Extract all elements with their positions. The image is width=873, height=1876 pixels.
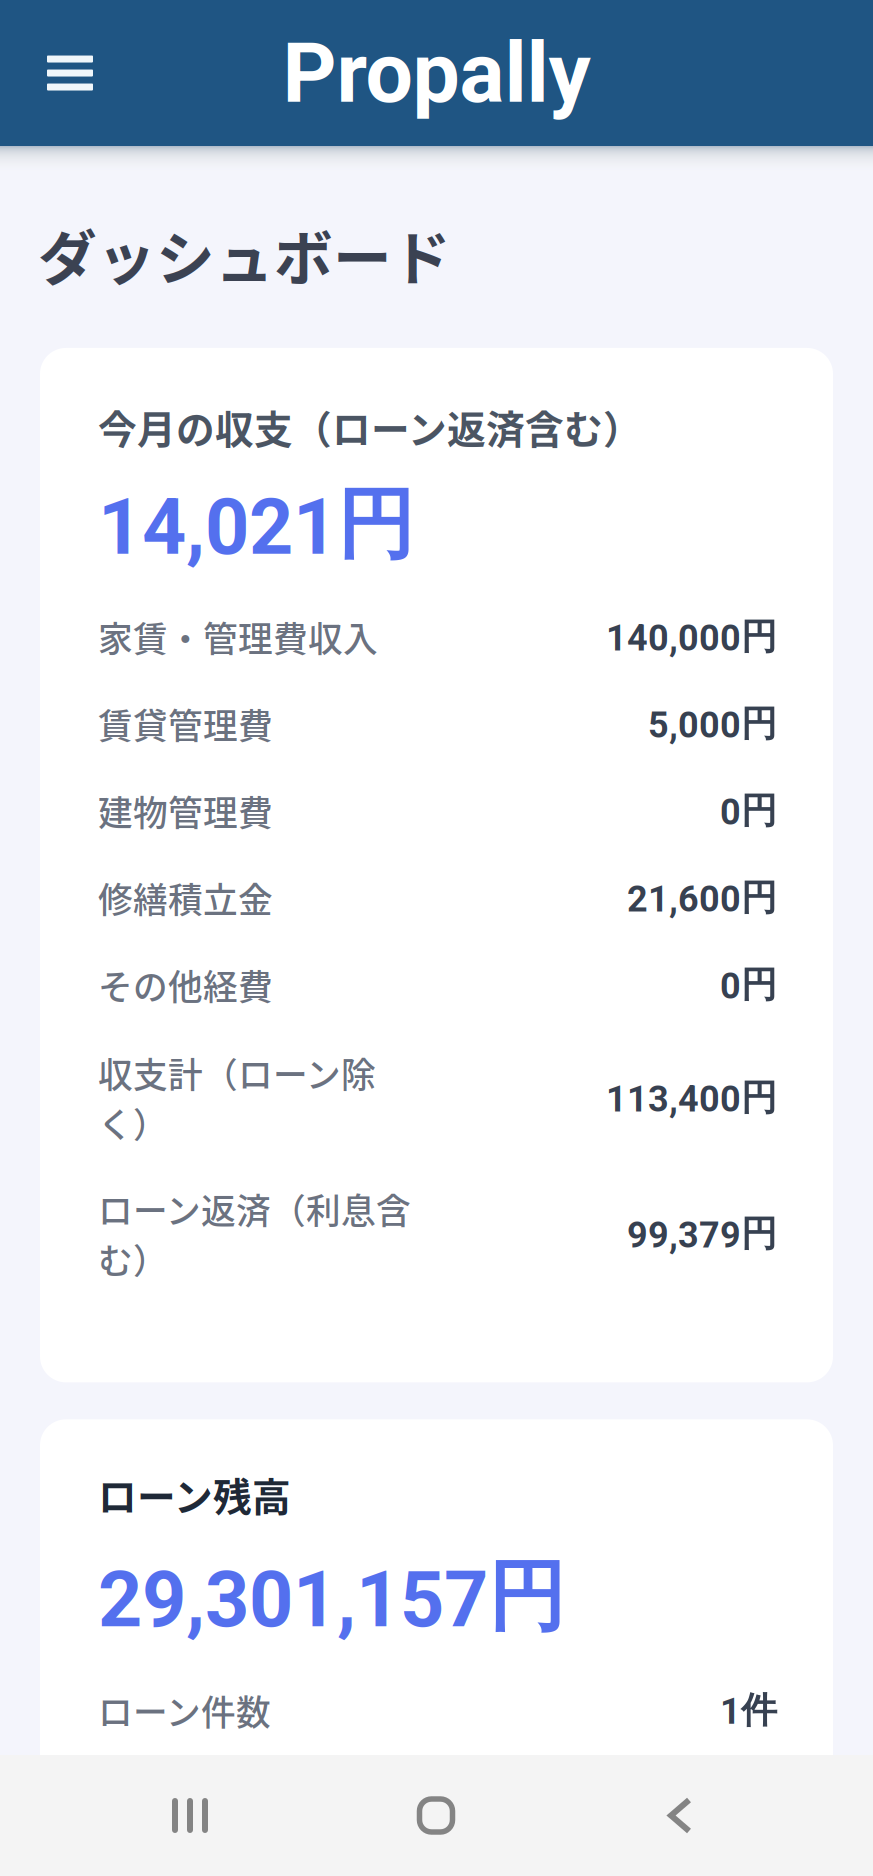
button[interactable]: Back — [616, 1755, 744, 1876]
staticText: その他経費 — [98, 960, 273, 1010]
staticText: ローン返済（利息含む） — [98, 1184, 411, 1284]
staticText: 建物管理費 — [98, 786, 273, 836]
staticText: 修繕積立金 — [98, 873, 273, 923]
staticText: 賃貸管理費 — [98, 699, 273, 749]
staticText: 今月の収支（ローン返済含む） — [98, 399, 642, 455]
staticText: 29,301,157円 — [98, 1548, 565, 1646]
staticText: Propally — [282, 24, 590, 122]
staticText: ローン件数 — [98, 1685, 271, 1735]
staticText: 家賃・管理費収入 — [98, 612, 378, 662]
button[interactable]: Recents — [126, 1755, 254, 1876]
button[interactable]: Home — [372, 1755, 500, 1876]
staticText: 1件 — [720, 1688, 777, 1733]
staticText: 収支計（ローン除く） — [98, 1048, 376, 1148]
staticText: 21,600円 — [627, 875, 777, 921]
staticText: 0円 — [720, 788, 777, 834]
staticText: 14,021円 — [98, 476, 414, 573]
staticText: ローン残高 — [98, 1466, 291, 1522]
staticText: 0円 — [720, 962, 777, 1008]
staticText: 99,379円 — [627, 1211, 777, 1257]
button[interactable]: Menu — [22, 0, 118, 146]
staticText: ダッシュボード — [38, 212, 451, 297]
staticText: 5,000円 — [648, 701, 777, 747]
staticText: 113,400円 — [606, 1075, 777, 1121]
staticText: 140,000円 — [606, 614, 777, 660]
